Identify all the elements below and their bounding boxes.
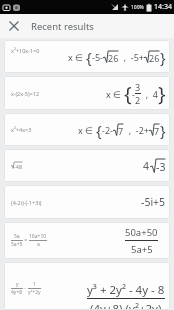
staticText: 26	[149, 52, 160, 64]
staticText: }	[158, 80, 166, 107]
staticText: 14:34	[154, 2, 172, 12]
staticText: ×	[23, 237, 29, 244]
button[interactable]: x²+10x-1=0	[4, 40, 170, 73]
staticText: 10a+10	[29, 233, 47, 240]
staticText: a	[37, 241, 40, 248]
staticText: x ∈	[68, 51, 86, 63]
staticText: (4y+8)·(y²+2y)	[90, 301, 162, 310]
staticText: }	[160, 120, 166, 140]
staticText: 7	[154, 125, 160, 137]
staticText: Recent results	[31, 20, 94, 33]
staticText: -48	[14, 163, 23, 170]
staticText: -2-	[102, 124, 113, 136]
staticText: {	[86, 47, 92, 67]
staticText: 5a	[14, 233, 20, 240]
button[interactable]: y	[4, 262, 170, 310]
staticText: x²+4x=3	[11, 126, 32, 133]
staticText: 5a+5	[131, 243, 153, 256]
button[interactable]: (4-2i)-(-1+3i)	[4, 185, 170, 219]
staticText: (4-2i)-(-1+3i)	[11, 199, 42, 206]
staticText: x²+10x-1=0	[11, 47, 40, 54]
staticText: y³ + 2y² - 4y - 8	[87, 282, 165, 298]
staticText: }	[160, 47, 166, 67]
staticText: x·(2x-5)=12	[11, 90, 40, 97]
staticText: 26	[108, 52, 119, 64]
staticText: 5a+5	[11, 241, 23, 248]
staticText: -	[23, 285, 28, 292]
staticText: , -5+	[119, 51, 144, 63]
staticText: y	[16, 281, 19, 288]
staticText: y²+2y	[28, 289, 41, 296]
staticText: -3	[156, 160, 166, 174]
staticText: 100%	[131, 4, 144, 11]
button[interactable]: x²+4x=3	[4, 113, 170, 146]
button[interactable]: 5a	[4, 222, 170, 259]
staticText: x ∈	[106, 88, 124, 100]
staticText: -5-	[92, 51, 103, 63]
staticText: 2	[135, 94, 141, 106]
staticText: -5i+5	[141, 195, 166, 209]
staticText: 4y+8	[11, 289, 23, 296]
staticText: 1	[33, 281, 36, 288]
staticText: , -2+	[124, 124, 149, 136]
button[interactable]	[0, 14, 28, 38]
staticText: x ∈	[78, 124, 96, 136]
button[interactable]: -48	[4, 149, 170, 182]
staticText: 4	[143, 159, 150, 173]
staticText: -	[132, 88, 135, 100]
button[interactable]: x·(2x-5)=12	[4, 76, 170, 110]
staticText: {	[124, 80, 132, 107]
staticText: 7	[118, 125, 124, 137]
staticText: 50a+50	[125, 226, 158, 239]
staticText: , 4	[141, 88, 158, 100]
staticText: 3	[135, 81, 141, 93]
staticText: {	[96, 120, 102, 140]
